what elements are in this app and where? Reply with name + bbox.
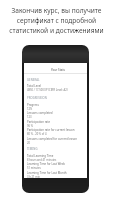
staticText: Participation rate for current lesson	[27, 128, 75, 132]
staticText: 12%	[27, 107, 33, 111]
staticText: 123	[27, 115, 32, 119]
staticText: 20	[27, 141, 31, 145]
staticText: Learning Time for Last Week	[27, 162, 66, 166]
staticText: Participation rate	[27, 120, 51, 124]
button[interactable]: Participation rate	[24, 120, 87, 128]
staticText: Закончив курс, вы получите сертификат с …	[9, 6, 104, 34]
staticText: 51 minutes	[27, 166, 41, 170]
staticText: TIMING	[27, 147, 38, 151]
button[interactable]: Participation rate for current lesson	[24, 128, 87, 136]
staticText: 4850 / 17.500 XP (CEFR Level: A2)	[27, 88, 68, 92]
staticText: 80 % - 20 % of 4	[27, 132, 47, 136]
button[interactable]: Total Learning Time	[24, 154, 87, 162]
staticText: Lessons completed for current lesson	[27, 137, 78, 141]
button[interactable]: Progress	[24, 103, 87, 111]
button[interactable]: Lessons completed for current lesson	[24, 137, 87, 145]
staticText: Lessons completed	[27, 111, 53, 115]
staticText: Learning Time for Last Month	[27, 171, 67, 175]
staticText: Progress	[27, 103, 39, 107]
staticText: 96 %	[27, 124, 33, 128]
staticText: 3 h 21 min	[27, 175, 41, 179]
staticText: Your Stats	[51, 68, 65, 72]
button[interactable]: Total Level	[24, 84, 87, 92]
staticText: 8 hours and 41 minutes	[27, 158, 57, 162]
staticText: Total Level	[27, 84, 42, 88]
staticText: GENERAL	[27, 78, 40, 82]
button[interactable]: Learning Time for Last Week	[24, 162, 87, 170]
button[interactable]: Learning Time for Last Month	[24, 171, 87, 179]
button[interactable]: Lessons completed	[24, 111, 87, 119]
staticText: Total Learning Time	[27, 154, 54, 158]
staticText: PROGRESSION	[27, 96, 47, 100]
